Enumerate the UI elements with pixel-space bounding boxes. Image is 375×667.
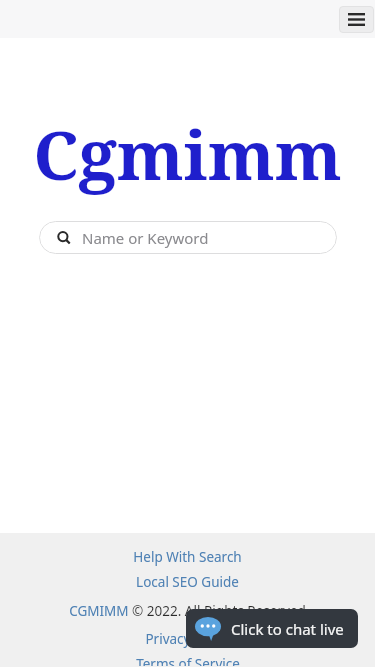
button[interactable]: CGMIMM © 2022. All Rights Reserved — [65, 601, 310, 621]
button[interactable]: Terms of Service — [130, 654, 246, 667]
staticText: Help With Search — [133, 548, 242, 566]
staticText: Privacy Policy — [145, 630, 231, 648]
button[interactable]: Privacy Policy — [139, 629, 237, 649]
button[interactable]: Help With Search — [127, 547, 248, 567]
button[interactable]: Click to chat live — [186, 609, 358, 648]
staticText: Click to chat live — [231, 619, 344, 639]
button[interactable]: Name or Keyword — [39, 221, 337, 254]
staticText: Local SEO Guide — [136, 573, 239, 591]
staticText: Name or Keyword — [82, 228, 209, 248]
button[interactable]: Open menu — [339, 6, 374, 33]
button[interactable]: Local SEO Guide — [130, 572, 245, 592]
staticText: Terms of Service — [136, 655, 240, 666]
staticText: Cgmimm — [33, 107, 342, 200]
staticText: CGMIMM © 2022. All Rights Reserved — [69, 602, 306, 620]
